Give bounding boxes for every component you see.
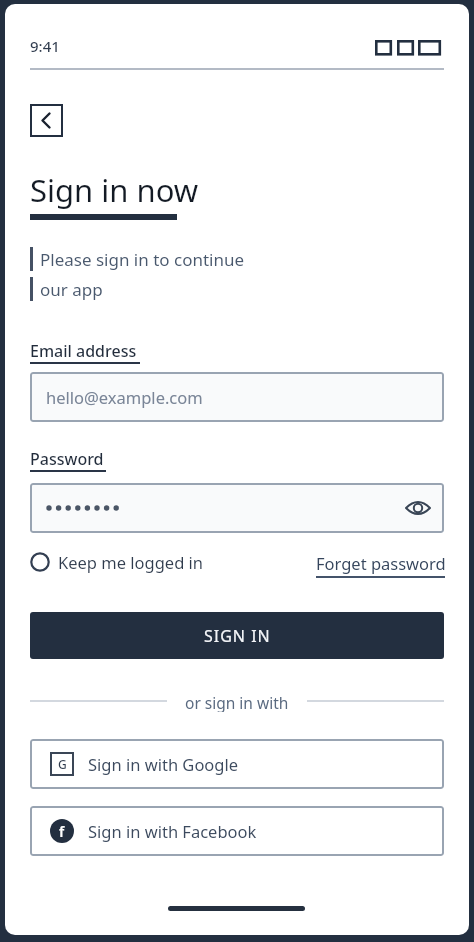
button[interactable]: Keep me logged in bbox=[30, 551, 230, 573]
staticText: Email address bbox=[30, 340, 137, 362]
button[interactable]: f bbox=[30, 806, 444, 856]
staticText: or sign in with bbox=[185, 692, 289, 712]
staticText: Sign in now bbox=[30, 169, 199, 211]
staticText: our app bbox=[40, 278, 103, 301]
staticText: G bbox=[58, 756, 67, 772]
staticText: Password bbox=[30, 448, 104, 470]
button[interactable] bbox=[30, 104, 63, 137]
staticText: Forget password bbox=[316, 552, 446, 574]
staticText: Please sign in to continue bbox=[40, 248, 245, 271]
staticText: Sign in with Facebook bbox=[88, 820, 257, 842]
staticText: hello@example.com bbox=[46, 386, 203, 408]
staticText: 9:41 bbox=[30, 36, 60, 56]
button[interactable]: Forget password bbox=[316, 552, 446, 574]
staticText: Keep me logged in bbox=[58, 551, 204, 573]
button[interactable]: SIGN IN bbox=[30, 612, 444, 659]
staticText: f bbox=[59, 822, 65, 841]
button[interactable]: G bbox=[30, 739, 444, 789]
button[interactable]: hello@example.com bbox=[30, 372, 444, 422]
button[interactable] bbox=[30, 483, 444, 533]
staticText: Sign in with Google bbox=[88, 753, 239, 775]
staticText: SIGN IN bbox=[204, 625, 271, 647]
